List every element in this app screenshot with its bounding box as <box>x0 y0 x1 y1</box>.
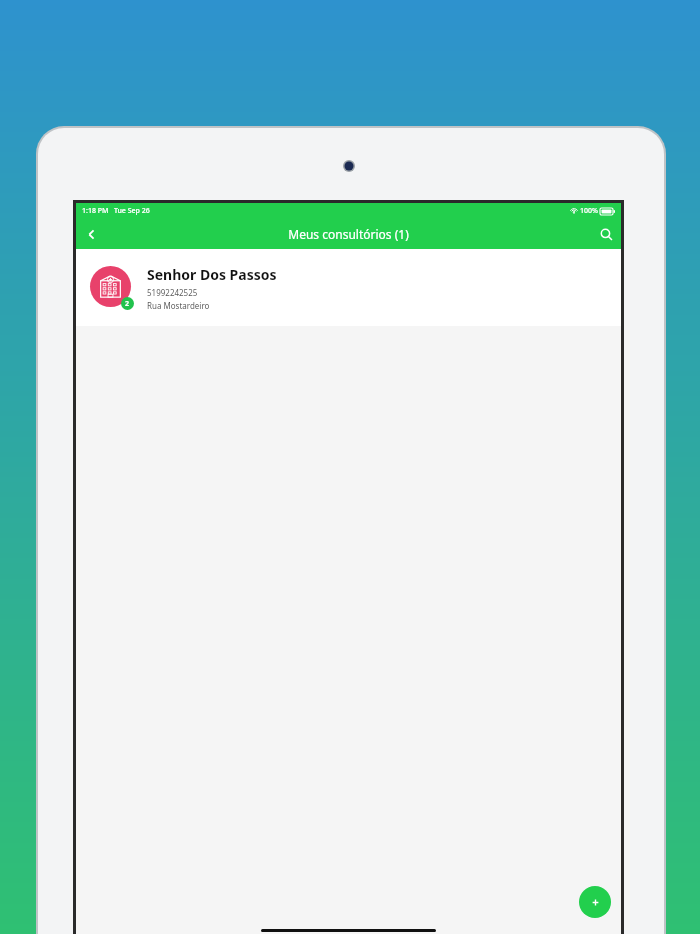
staticText: 2 <box>125 299 130 309</box>
staticText: 51992242525 <box>147 287 198 298</box>
button[interactable]: 2 <box>76 249 621 326</box>
button[interactable]: Back <box>76 219 106 249</box>
staticText: Senhor Dos Passos <box>147 265 277 284</box>
staticText: 1:18 PM Tue Sep 26 <box>82 206 150 216</box>
staticText: Meus consultórios (1) <box>288 226 409 242</box>
button[interactable]: Search <box>591 219 621 249</box>
staticText: 100% <box>580 206 598 216</box>
staticText: Rua Mostardeiro <box>147 300 210 311</box>
button[interactable]: Add <box>579 886 611 918</box>
